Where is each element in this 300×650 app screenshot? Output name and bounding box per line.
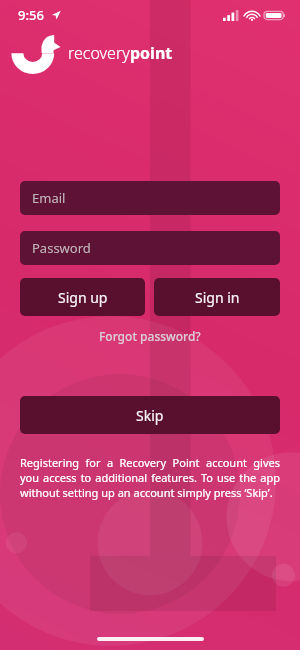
staticText: Password [32,239,91,257]
button[interactable]: Sign up [20,278,145,316]
staticText: Forgot password? [99,328,201,344]
staticText: Sign in [195,288,240,307]
button[interactable]: Email [20,181,280,215]
staticText: Sign up [58,288,108,307]
staticText: recovery [68,42,130,64]
staticText: 9:56 [18,6,44,24]
button[interactable]: Sign in [154,278,280,316]
staticText: Skip [136,406,164,425]
staticText: point [130,42,173,64]
button[interactable]: Skip [20,396,280,434]
staticText: Registering for a Recovery Point account… [20,455,280,500]
button[interactable]: Forgot password? [91,325,209,347]
button[interactable]: Password [20,231,280,265]
staticText: Email [32,189,66,207]
